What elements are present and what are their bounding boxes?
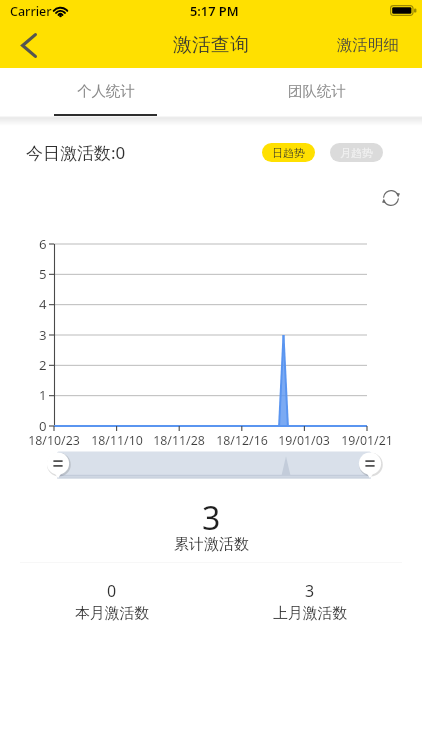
staticText: 4 — [39, 295, 47, 311]
button[interactable]: Range handle — [357, 452, 383, 478]
staticText: 18/11/28 — [153, 432, 205, 449]
staticText: 累计激活数 — [174, 535, 249, 554]
button[interactable]: Range handle — [45, 452, 71, 478]
staticText: 团队统计 — [288, 82, 346, 100]
button[interactable]: 团队统计 — [211, 68, 422, 119]
staticText: 2 — [39, 356, 47, 372]
staticText: 3 — [39, 326, 47, 342]
staticText: 激活查询 — [173, 33, 249, 57]
button[interactable]: 激活明细 — [323, 22, 422, 68]
button[interactable]: Refresh — [379, 186, 403, 210]
staticText: 月趋势 — [340, 146, 373, 160]
button[interactable]: Back — [0, 22, 56, 68]
staticText: 3 — [202, 496, 221, 540]
staticText: Carrier — [10, 3, 52, 20]
staticText: 0 — [107, 580, 117, 602]
button[interactable]: 0 — [13, 582, 211, 634]
staticText: 0 — [39, 417, 47, 433]
staticText: 18/10/23 — [28, 432, 80, 449]
staticText: 1 — [39, 386, 47, 402]
button[interactable]: 3 — [211, 582, 409, 634]
staticText: 个人统计 — [77, 82, 135, 100]
staticText: 3 — [305, 580, 315, 602]
staticText: 19/01/21 — [341, 432, 393, 449]
staticText: 5:17 PM — [190, 2, 239, 19]
staticText: 上月激活数 — [273, 604, 347, 623]
staticText: 激活明细 — [337, 35, 399, 55]
staticText: 6 — [39, 235, 47, 251]
staticText: 19/01/03 — [278, 432, 330, 449]
staticText: 本月激活数 — [75, 604, 149, 623]
staticText: 18/12/16 — [216, 432, 268, 449]
button[interactable]: 日趋势 — [262, 143, 315, 162]
button[interactable]: 个人统计 — [0, 68, 211, 119]
staticText: 18/11/10 — [91, 432, 143, 449]
staticText: 今日激活数:0 — [26, 141, 126, 164]
staticText: 日趋势 — [272, 146, 305, 160]
staticText: 5 — [39, 265, 47, 281]
button[interactable]: 月趋势 — [330, 143, 383, 162]
